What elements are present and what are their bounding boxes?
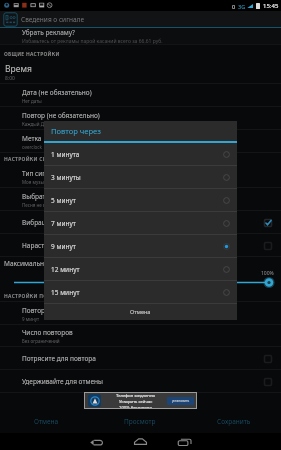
staticText: Сведения о сигнале — [21, 15, 84, 24]
button[interactable]: Максимальная громкость — [0, 257, 281, 302]
button[interactable]: Убрать рекламу? — [0, 28, 281, 45]
staticText: Сохранить — [217, 417, 251, 426]
button[interactable]: 15 минут — [44, 281, 237, 304]
staticText: Повтор через — [51, 126, 102, 136]
button[interactable]: Метка — [0, 130, 281, 153]
staticText: Избавьтесь от рекламы парой касаний всег… — [22, 38, 163, 45]
button[interactable]: Время — [0, 61, 281, 84]
button[interactable]: Повтор (не обязательно) — [0, 107, 281, 130]
button[interactable]: 12 минут — [44, 258, 237, 281]
staticText: 100% бесплатно — [119, 405, 152, 408]
staticText: 3 минуты — [51, 173, 81, 182]
staticText: ОБЩИЕ НАСТРОЙКИ — [4, 51, 60, 58]
button[interactable]: Сведения о сигнале — [0, 11, 281, 27]
staticText: Время — [5, 63, 32, 75]
button[interactable]: Вибрация — [0, 211, 281, 234]
staticText: 15:45 — [263, 2, 279, 10]
staticText: установить — [172, 399, 190, 403]
button[interactable]: 5 минут — [44, 189, 237, 212]
button[interactable]: Toggle — [262, 353, 273, 364]
button[interactable]: Home — [126, 433, 154, 450]
button[interactable]: 7 минут — [44, 212, 237, 235]
staticText: 15 минут — [51, 288, 80, 297]
button[interactable]: Back — [82, 433, 110, 450]
button[interactable]: Отмена — [0, 410, 93, 433]
staticText: Каждый Д — [22, 121, 44, 127]
staticText: Удерживайте для отмены — [22, 377, 103, 386]
button[interactable]: Toggle — [262, 217, 273, 228]
staticText: 8:00 — [5, 75, 15, 82]
staticText: 5 минут — [51, 196, 76, 205]
staticText: 0 — [232, 3, 236, 10]
staticText: Потрясите для повтора — [22, 354, 96, 363]
button[interactable]: Нарастание громкости — [0, 234, 281, 257]
button[interactable]: Дата (не обязательно) — [0, 84, 281, 107]
staticText: Дата (не обязательно) — [22, 88, 92, 97]
staticText: Просмотр — [124, 417, 156, 426]
button[interactable]: Recents — [170, 433, 198, 450]
button[interactable]: Повтор — [0, 302, 281, 325]
staticText: Метка — [22, 134, 42, 143]
button[interactable]: 1 минута — [44, 143, 237, 166]
staticText: НАСТРОЙКИ ПОВТОРА — [4, 293, 65, 300]
staticText: 3G — [238, 3, 246, 10]
staticText: Выбрать музыку — [22, 192, 74, 201]
button[interactable]: Телефон медленно — [84, 392, 197, 409]
staticText: 100% — [261, 270, 274, 277]
staticText: overclock — [22, 144, 42, 150]
staticText: Нарастание громкости — [22, 241, 95, 250]
staticText: Повтор (не обязательно) — [22, 111, 100, 120]
button[interactable]: Отмена — [44, 304, 237, 318]
button[interactable]: Удерживайте для отмены — [0, 370, 281, 393]
staticText: Без ограничений — [22, 338, 60, 344]
button[interactable]: Toggle — [262, 240, 273, 251]
button[interactable]: 9 минут — [44, 235, 237, 258]
button[interactable]: Toggle — [262, 376, 273, 387]
staticText: Повтор — [22, 306, 45, 315]
staticText: Вибрация — [22, 218, 54, 227]
staticText: НАСТРОЙКИ СИГНАЛА — [4, 156, 66, 163]
staticText: 12 минут — [51, 265, 80, 274]
button[interactable]: Тип сигнала — [0, 165, 281, 188]
button[interactable]: Число повторов — [0, 325, 281, 347]
staticText: Ускорить сейчас — [119, 399, 153, 405]
button[interactable]: Выбрать музыку — [0, 188, 281, 211]
staticText: Моя музыка — [22, 179, 49, 185]
staticText: Тип сигнала — [22, 169, 61, 178]
staticText: Отмена — [130, 308, 151, 315]
staticText: 7 минут — [51, 219, 76, 228]
button[interactable]: Просмотр — [93, 410, 187, 433]
staticText: Максимальная громкость — [4, 259, 86, 268]
button[interactable]: Сохранить — [187, 410, 281, 433]
staticText: Отмена — [34, 417, 59, 426]
staticText: 9 минут — [22, 316, 40, 322]
staticText: Убрать рекламу? — [22, 28, 75, 37]
staticText: Песня не выбрана — [22, 202, 63, 208]
button[interactable]: 3 минуты — [44, 166, 237, 189]
staticText: Телефон медленно — [116, 393, 155, 399]
staticText: Число повторов — [22, 328, 73, 337]
staticText: Нет даты — [22, 98, 42, 104]
staticText: 9 минут — [51, 242, 76, 251]
button[interactable]: Потрясите для повтора — [0, 347, 281, 370]
staticText: 1 минута — [51, 150, 80, 159]
